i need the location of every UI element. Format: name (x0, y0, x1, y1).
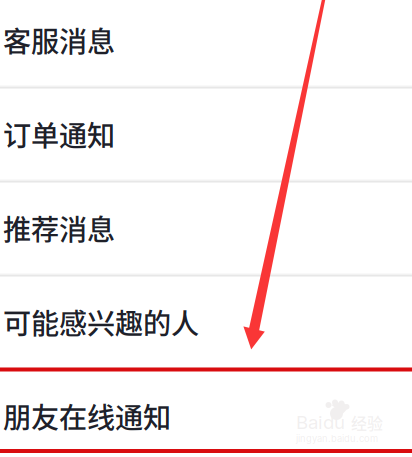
staticText: Baidu (296, 411, 345, 434)
button[interactable]: 订单通知 (0, 87, 412, 181)
staticText: 订单通知 (3, 114, 115, 154)
button[interactable]: 可能感兴趣的人 (0, 275, 412, 369)
staticText: 推荐消息 (3, 208, 115, 248)
button[interactable]: 朋友在线通知 (0, 369, 412, 457)
button[interactable]: 客服消息 (0, 0, 412, 87)
staticText: 客服消息 (3, 20, 115, 60)
staticText: 可能感兴趣的人 (3, 302, 199, 342)
button[interactable]: 推荐消息 (0, 181, 412, 275)
staticText: 朋友在线通知 (3, 396, 171, 436)
staticText: 经验 (351, 411, 383, 434)
staticText: jingyan.baidu.com (296, 433, 378, 444)
